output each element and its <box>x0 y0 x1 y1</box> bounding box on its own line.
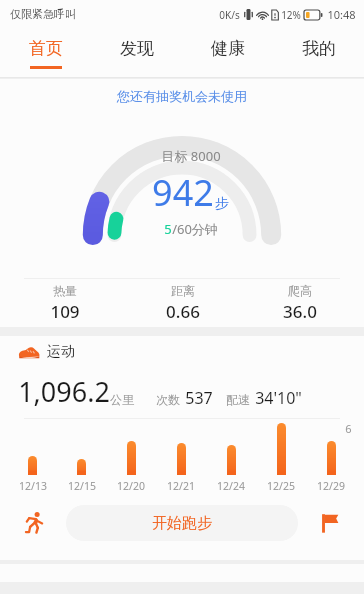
button[interactable]: 爬高 <box>241 283 358 323</box>
button[interactable]: Running activity <box>14 503 54 543</box>
staticText: 12/15 <box>68 479 96 493</box>
button[interactable]: 首页 <box>0 28 91 78</box>
staticText: 6 <box>345 421 352 436</box>
button[interactable]: 运动 <box>18 336 364 368</box>
staticText: 942 <box>152 168 214 217</box>
staticText: 步 <box>215 195 229 213</box>
button[interactable]: 我的 <box>273 28 364 78</box>
staticText: 首页 <box>29 38 63 59</box>
staticText: 热量 <box>53 283 77 298</box>
staticText: 0.66 <box>166 300 200 323</box>
button[interactable]: 6 <box>0 419 364 497</box>
staticText: 目标 8000 <box>161 147 221 165</box>
staticText: 距离 <box>171 283 195 298</box>
staticText: 12/29 <box>317 479 345 493</box>
button[interactable]: 热量 <box>6 283 124 323</box>
button[interactable]: Goal flag <box>310 503 350 543</box>
staticText: /60分钟 <box>172 220 218 238</box>
staticText: 发现 <box>120 38 154 59</box>
staticText: 公里 <box>110 392 134 407</box>
staticText: 配速 <box>226 392 250 407</box>
staticText: 1,096.2 <box>18 373 110 410</box>
staticText: 109 <box>50 300 80 323</box>
staticText: 健康 <box>211 38 245 59</box>
staticText: 12/24 <box>217 479 245 493</box>
staticText: 12/21 <box>167 479 195 493</box>
staticText: 0K/s <box>219 8 240 22</box>
button[interactable]: 开始跑步 <box>66 505 298 541</box>
staticText: 537 <box>185 387 213 409</box>
staticText: 开始跑步 <box>152 514 212 533</box>
staticText: 12% <box>281 8 301 22</box>
staticText: 34'10" <box>255 387 302 409</box>
staticText: 爬高 <box>288 283 312 298</box>
button[interactable]: 发现 <box>91 28 182 78</box>
button[interactable]: 健康 <box>182 28 273 78</box>
button[interactable]: 目标 8000 <box>0 113 364 278</box>
staticText: 10:48 <box>327 7 356 22</box>
staticText: 我的 <box>302 38 336 59</box>
staticText: 运动 <box>47 343 75 361</box>
staticText: 次数 <box>156 392 180 407</box>
staticText: 12/25 <box>267 479 295 493</box>
staticText: 12/13 <box>19 479 47 493</box>
staticText: 5 <box>164 220 172 238</box>
staticText: 36.0 <box>283 300 317 323</box>
staticText: 12/20 <box>117 479 145 493</box>
staticText: 您还有抽奖机会未使用 <box>117 88 247 104</box>
button[interactable]: 您还有抽奖机会未使用 <box>0 79 364 113</box>
button[interactable]: 距离 <box>124 283 241 323</box>
staticText: 仅限紧急呼叫 <box>10 7 76 21</box>
